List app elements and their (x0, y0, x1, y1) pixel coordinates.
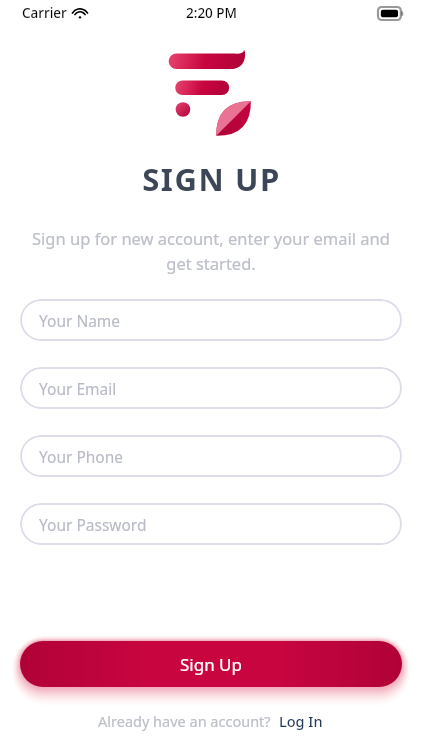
button[interactable]: Log In (278, 709, 324, 733)
staticText: Your Phone (39, 446, 124, 467)
button[interactable]: Your Name (20, 299, 402, 341)
staticText: Sign Up (180, 653, 242, 676)
staticText: 2:20 PM (186, 4, 237, 22)
staticText: Sign up for new account, enter your emai… (20, 227, 402, 274)
staticText: Your Email (39, 378, 117, 399)
staticText: Carrier (22, 4, 67, 22)
staticText: Your Name (39, 310, 121, 331)
button[interactable]: Your Phone (20, 435, 402, 477)
button[interactable]: Your Password (20, 503, 402, 545)
staticText: Already have an account? (98, 711, 271, 731)
staticText: SIGN UP (142, 158, 281, 200)
button[interactable]: Your Email (20, 367, 402, 409)
button[interactable]: Sign Up (20, 641, 402, 687)
staticText: Log In (279, 711, 323, 731)
other: Battery full (378, 7, 404, 20)
other: Wi-Fi (73, 7, 87, 19)
staticText: Your Password (39, 514, 147, 535)
